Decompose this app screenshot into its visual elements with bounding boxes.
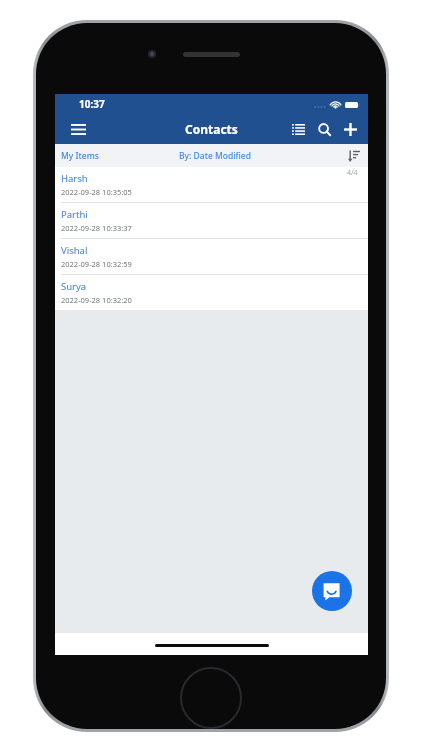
staticText: Parthi [61,208,88,221]
button[interactable]: My Items [61,150,99,162]
button[interactable]: Search [311,116,337,142]
button[interactable]: List view [285,116,311,142]
staticText: Contacts [185,121,238,137]
button[interactable]: Vishal [55,239,368,274]
staticText: 4/4 [347,168,358,178]
button[interactable]: By: Date Modified [179,150,252,162]
button[interactable]: Surya [55,275,368,310]
staticText: Harsh [61,172,88,185]
button[interactable]: Sort order [344,146,364,166]
button[interactable]: Chat [312,571,352,611]
staticText: 2022-09-28 10:35:05 [61,187,132,197]
staticText: Vishal [61,244,88,257]
button[interactable]: Add [337,116,363,142]
button[interactable]: Harsh [55,167,368,202]
staticText: 2022-09-28 10:33:37 [61,223,132,233]
button[interactable]: Parthi [55,203,368,238]
staticText: 2022-09-28 10:32:59 [61,259,132,269]
staticText: Surya [61,280,87,293]
button[interactable]: Menu [65,116,91,142]
staticText: 10:37 [79,97,105,111]
staticText: 2022-09-28 10:32:20 [61,295,132,305]
